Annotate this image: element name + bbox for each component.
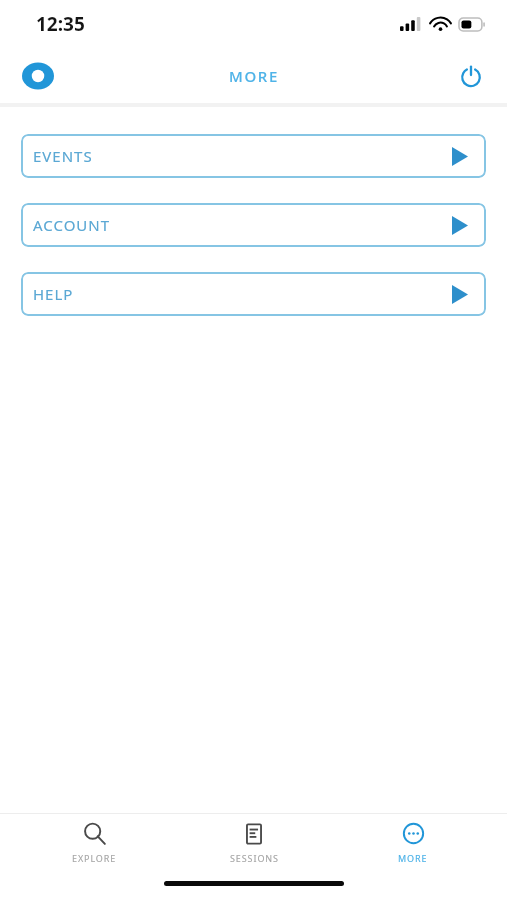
- staticText: 12:35: [36, 11, 85, 37]
- button[interactable]: SESSIONS: [189, 814, 319, 872]
- button[interactable]: Log out: [449, 54, 493, 98]
- button[interactable]: HELP: [21, 272, 486, 316]
- button[interactable]: Menu: [14, 52, 62, 100]
- staticText: SESSIONS: [230, 852, 279, 864]
- staticText: ACCOUNT: [33, 215, 111, 235]
- staticText: EXPLORE: [72, 852, 117, 864]
- staticText: MORE: [398, 852, 428, 864]
- staticText: MORE: [229, 66, 279, 86]
- staticText: EVENTS: [33, 146, 93, 166]
- button[interactable]: ACCOUNT: [21, 203, 486, 247]
- button[interactable]: MORE: [348, 814, 478, 872]
- staticText: HELP: [33, 284, 74, 304]
- button[interactable]: EVENTS: [21, 134, 486, 178]
- button[interactable]: EXPLORE: [29, 814, 159, 872]
